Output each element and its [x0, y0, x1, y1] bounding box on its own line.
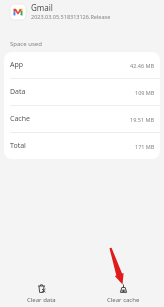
button[interactable]: Clear data — [0, 284, 82, 304]
button[interactable]: Data — [4, 79, 160, 105]
staticText: Space used — [10, 40, 42, 48]
staticText: Cache — [10, 114, 30, 124]
button[interactable]: Gmail — [10, 4, 111, 22]
staticText: 171 MB — [135, 143, 155, 150]
staticText: Total — [10, 141, 26, 151]
staticText: Clear cache — [107, 296, 140, 304]
staticText: Clear data — [27, 296, 56, 304]
staticText: App — [10, 60, 24, 70]
button[interactable]: Total — [4, 133, 160, 159]
button[interactable]: Cache — [4, 106, 160, 132]
button[interactable]: App — [4, 52, 160, 78]
staticText: Gmail — [31, 2, 53, 13]
staticText: 2023.03.05.518313126.Release — [31, 13, 111, 20]
staticText: 19.51 MB — [130, 116, 155, 123]
staticText: Data — [10, 87, 26, 97]
staticText: 109 MB — [135, 89, 155, 96]
staticText: 42.46 MB — [130, 62, 155, 69]
button[interactable]: Clear cache — [82, 284, 164, 304]
